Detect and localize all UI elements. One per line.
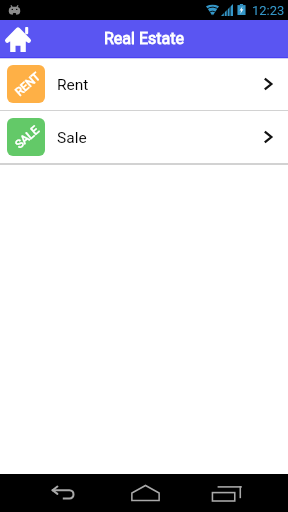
staticText: Sale xyxy=(57,129,87,147)
staticText: 12:23 xyxy=(252,3,285,18)
button[interactable]: Recents xyxy=(201,474,249,512)
button[interactable]: RENT xyxy=(0,59,288,110)
staticText: Rent xyxy=(57,76,89,94)
staticText: SALE xyxy=(12,122,42,151)
staticText: RENT xyxy=(12,69,43,98)
staticText: Real Estate xyxy=(104,29,184,48)
button[interactable]: Home xyxy=(2,23,34,55)
button[interactable]: Home xyxy=(121,474,169,512)
button[interactable]: Back xyxy=(40,474,88,512)
button[interactable]: SALE xyxy=(0,111,288,163)
